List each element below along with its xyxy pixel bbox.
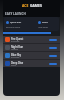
button[interactable]: Blue Sky [3, 52, 60, 59]
staticText: Quick play [10, 21, 22, 24]
button[interactable]: Fire Quest [3, 36, 60, 43]
staticText: installed [11, 56, 20, 59]
button[interactable]: Quick play [4, 17, 36, 31]
staticText: installed [11, 40, 20, 43]
staticText: Night Run [11, 45, 24, 48]
staticText: Deep Dive [11, 61, 24, 64]
button[interactable] [49, 39, 57, 41]
staticText: GAMES [30, 3, 42, 8]
button[interactable]: Deep Dive [3, 60, 60, 67]
staticText: ACE [22, 3, 29, 8]
staticText: EASY LAUNCH [5, 12, 26, 16]
staticText: Resume game [6, 26, 21, 29]
staticText: New deals [38, 26, 49, 29]
button[interactable] [49, 63, 57, 65]
staticText: Blue Sky [11, 53, 22, 56]
button[interactable]: Quick play [4, 17, 59, 31]
button[interactable]: Night Run [3, 44, 60, 51]
button[interactable]: Store [36, 17, 59, 31]
staticText: update [11, 48, 18, 51]
button[interactable] [49, 47, 57, 49]
staticText: open [11, 64, 17, 67]
staticText: Fire Quest [11, 37, 24, 40]
button[interactable] [49, 55, 57, 57]
staticText: Store [42, 21, 48, 24]
